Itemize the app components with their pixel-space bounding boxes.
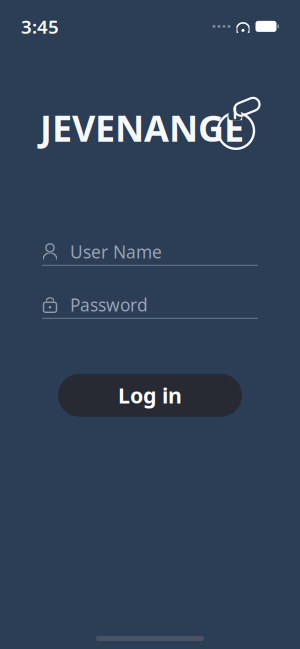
button[interactable]: User Name xyxy=(42,239,258,266)
button[interactable]: Password xyxy=(42,292,258,319)
staticText: JEVENANGE xyxy=(40,104,244,152)
staticText: Log in xyxy=(118,381,182,409)
staticText: 3:45 xyxy=(21,14,59,39)
staticText: User Name xyxy=(70,240,162,263)
staticText: Password xyxy=(70,293,148,316)
button[interactable]: Log in xyxy=(58,374,242,417)
